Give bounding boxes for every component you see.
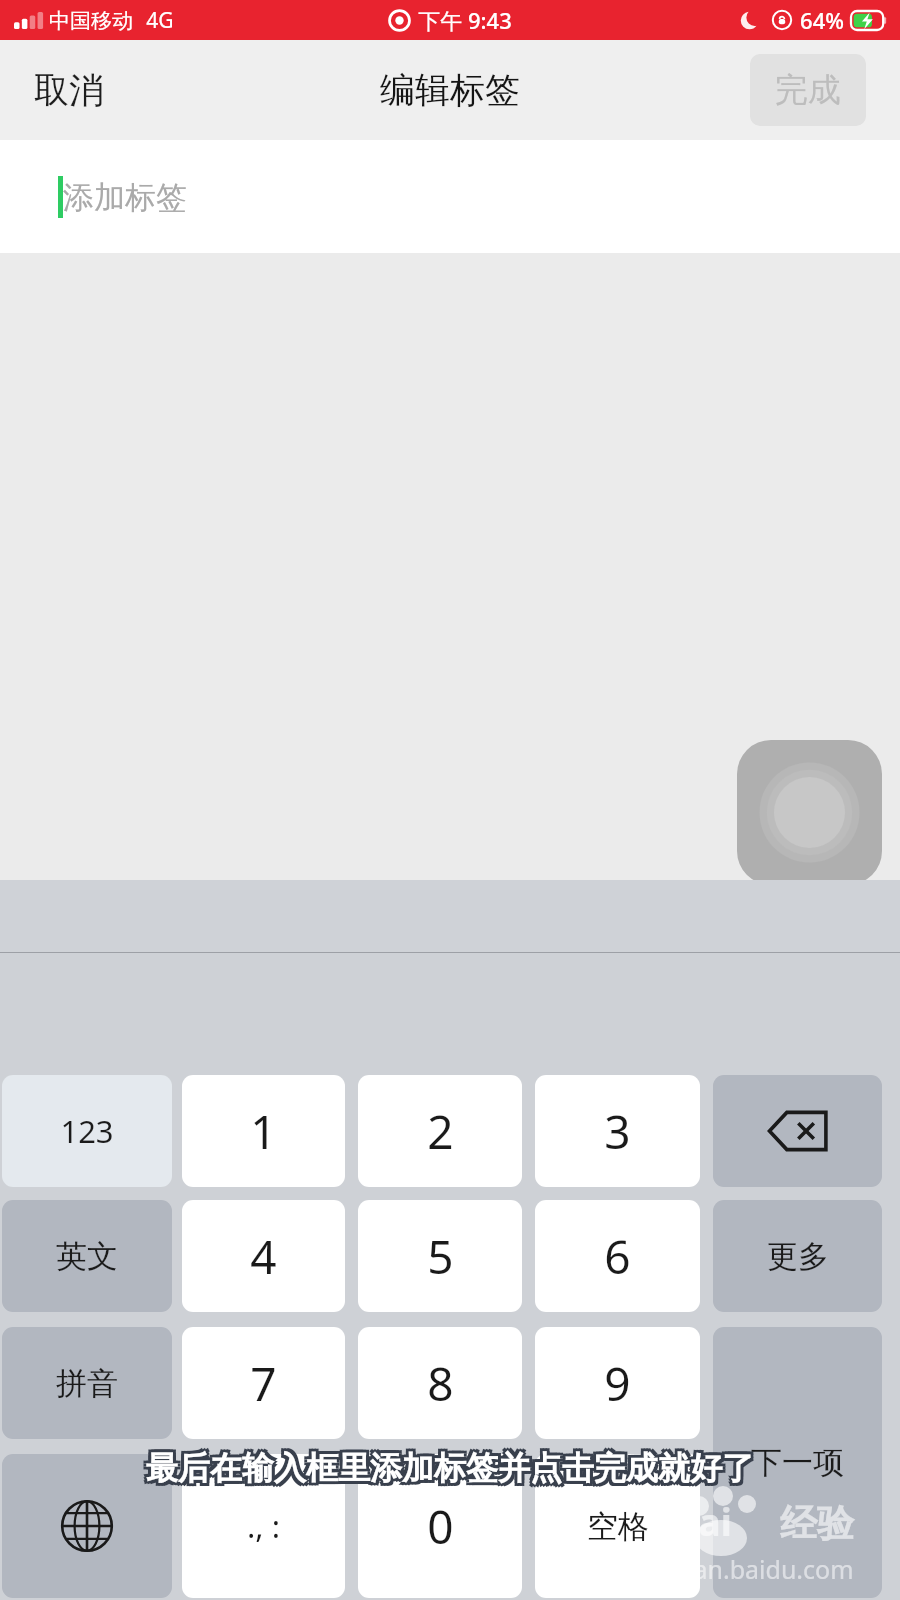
button[interactable]: 完成 — [750, 54, 866, 126]
staticText: 添加标签 — [63, 178, 187, 217]
staticText: 4 — [250, 1225, 277, 1288]
button[interactable]: 8 — [358, 1327, 522, 1439]
staticText: 7 — [250, 1352, 277, 1415]
staticText: 0 — [427, 1495, 454, 1558]
staticText: 1 — [250, 1100, 277, 1163]
staticText: ., : — [247, 1505, 280, 1547]
button[interactable]: 123 — [2, 1075, 172, 1187]
button[interactable]: AssistiveTouch — [737, 740, 882, 885]
button[interactable]: 6 — [535, 1200, 700, 1312]
staticText: 8 — [427, 1352, 454, 1415]
button[interactable]: 5 — [358, 1200, 522, 1312]
staticText: 3 — [604, 1100, 631, 1163]
staticText: 64% — [800, 5, 844, 35]
staticText: 6 — [604, 1225, 631, 1288]
button[interactable]: 9 — [535, 1327, 700, 1439]
button[interactable]: 1 — [182, 1075, 345, 1187]
staticText: 4G — [146, 6, 174, 35]
staticText: 5 — [427, 1225, 454, 1288]
staticText: 拼音 — [56, 1364, 118, 1403]
staticText: 下午 9:43 — [418, 5, 512, 35]
button[interactable]: 添加标签 — [0, 140, 900, 253]
button[interactable]: 下一项 — [713, 1327, 882, 1598]
staticText: 123 — [60, 1110, 114, 1152]
staticText: 取消 — [34, 68, 104, 112]
button[interactable]: 0 — [358, 1454, 522, 1598]
staticText: 英文 — [56, 1237, 118, 1276]
button[interactable]: 空格 — [535, 1454, 700, 1598]
button[interactable]: 英文 — [2, 1200, 172, 1312]
button[interactable]: 更多 — [713, 1200, 882, 1312]
button[interactable]: 取消 — [12, 56, 126, 124]
button[interactable]: 2 — [358, 1075, 522, 1187]
staticText: 下一项 — [751, 1443, 844, 1482]
staticText: 更多 — [767, 1237, 829, 1276]
staticText: 9 — [604, 1352, 631, 1415]
button[interactable]: 拼音 — [2, 1327, 172, 1439]
staticText: 空格 — [587, 1507, 649, 1546]
button[interactable]: 4 — [182, 1200, 345, 1312]
button[interactable]: ., : — [182, 1454, 345, 1598]
staticText: 编辑标签 — [380, 68, 520, 112]
button[interactable]: Switch keyboard — [2, 1454, 172, 1598]
staticText: 中国移动 — [49, 8, 133, 34]
staticText: 2 — [427, 1100, 454, 1163]
button[interactable]: 7 — [182, 1327, 345, 1439]
staticText: 完成 — [775, 69, 841, 111]
button[interactable]: Backspace — [713, 1075, 882, 1187]
button[interactable]: 3 — [535, 1075, 700, 1187]
